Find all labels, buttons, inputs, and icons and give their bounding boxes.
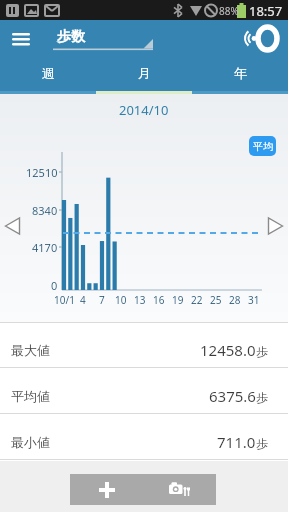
button[interactable]: 平均 xyxy=(249,136,276,156)
staticText: 最大値 xyxy=(11,342,50,358)
staticText: 711.0 xyxy=(217,432,256,452)
staticText: 8340 xyxy=(32,203,58,218)
staticText: 12458.0 xyxy=(200,340,256,360)
staticText: 16 xyxy=(153,293,165,307)
staticText: 6375.6 xyxy=(209,386,256,406)
button[interactable] xyxy=(143,474,216,505)
button[interactable]: 年 xyxy=(192,56,288,94)
staticText: 10 xyxy=(115,293,127,307)
staticText: 月 xyxy=(138,65,151,81)
staticText: 10/1 xyxy=(54,293,75,307)
staticText: 歩 xyxy=(256,344,268,359)
button[interactable] xyxy=(238,22,284,54)
staticText: 歩 xyxy=(256,436,268,451)
staticText: 2014/10 xyxy=(119,101,169,119)
staticText: 最小値 xyxy=(11,434,50,450)
button[interactable]: 最大値 xyxy=(0,323,288,367)
staticText: 28 xyxy=(229,293,241,307)
button[interactable]: 歩数 xyxy=(50,22,154,54)
staticText: 12510 xyxy=(26,165,58,180)
button[interactable] xyxy=(70,474,143,505)
staticText: 7 xyxy=(99,293,105,307)
button[interactable]: 月 xyxy=(96,56,192,94)
staticText: 4170 xyxy=(32,240,58,255)
staticText: 4 xyxy=(80,293,86,307)
staticText: 13 xyxy=(134,293,146,307)
staticText: 19 xyxy=(172,293,184,307)
staticText: 0 xyxy=(51,278,58,293)
button[interactable]: 平均値 xyxy=(0,368,288,413)
staticText: 平均値 xyxy=(11,388,50,404)
button[interactable]: 週 xyxy=(0,56,96,94)
button[interactable]: 最小値 xyxy=(0,414,288,459)
staticText: 88% xyxy=(219,4,239,18)
staticText: 22 xyxy=(191,293,203,307)
staticText: 歩数 xyxy=(57,28,85,46)
staticText: 31 xyxy=(248,293,260,307)
staticText: 週 xyxy=(42,65,55,81)
button[interactable] xyxy=(6,26,36,52)
staticText: 18:57 xyxy=(249,2,283,20)
staticText: 平均 xyxy=(253,140,273,153)
staticText: 年 xyxy=(234,65,247,81)
staticText: 25 xyxy=(210,293,222,307)
staticText: 歩 xyxy=(256,390,268,405)
button[interactable] xyxy=(262,206,288,246)
button[interactable] xyxy=(0,206,26,246)
